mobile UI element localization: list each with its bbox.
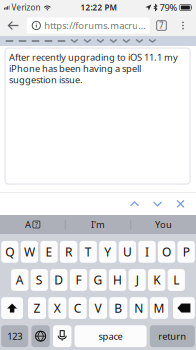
staticText: 12:22 PM bbox=[80, 2, 116, 13]
staticText: Verizon bbox=[12, 2, 41, 13]
button[interactable]: Delete bbox=[173, 297, 195, 319]
button[interactable]: Dismiss keyboard bbox=[169, 193, 192, 215]
staticText: Q bbox=[5, 244, 14, 260]
staticText: L bbox=[173, 272, 179, 288]
button[interactable]: Next field bbox=[146, 193, 169, 215]
button[interactable]: X bbox=[48, 297, 66, 319]
staticText: ? bbox=[35, 220, 38, 229]
staticText: W bbox=[24, 244, 35, 260]
staticText: After recently upgrading to iOS 11.1 my … bbox=[9, 51, 178, 86]
button[interactable]: You bbox=[131, 215, 196, 234]
button[interactable]: D bbox=[50, 269, 67, 291]
staticText: Z bbox=[33, 300, 40, 316]
staticText: F bbox=[75, 272, 81, 288]
button[interactable]: H bbox=[109, 269, 126, 291]
button[interactable]: Shift bbox=[1, 297, 23, 319]
button[interactable]: P bbox=[177, 241, 195, 263]
button[interactable]: C bbox=[69, 297, 87, 319]
button[interactable]: Y bbox=[99, 241, 116, 263]
button[interactable]: M bbox=[150, 297, 168, 319]
button[interactable]: space bbox=[75, 325, 147, 347]
button[interactable]: return bbox=[150, 325, 195, 347]
staticText: E bbox=[45, 244, 52, 260]
button[interactable]: Format bbox=[55, 36, 68, 46]
button[interactable]: K bbox=[148, 269, 165, 291]
staticText: I'm bbox=[91, 218, 105, 231]
staticText: P bbox=[183, 244, 190, 260]
staticText: N bbox=[134, 300, 143, 316]
staticText: V bbox=[94, 300, 101, 316]
button[interactable]: L bbox=[168, 269, 185, 291]
button[interactable]: Format bbox=[29, 36, 42, 46]
button[interactable]: Tabs bbox=[151, 15, 172, 36]
staticText: 79% bbox=[160, 1, 178, 14]
button[interactable]: E bbox=[40, 241, 58, 263]
button[interactable]: Format bbox=[133, 36, 146, 46]
staticText: J bbox=[136, 272, 139, 288]
button[interactable]: T bbox=[80, 241, 97, 263]
staticText: C bbox=[74, 300, 82, 316]
staticText: O bbox=[162, 244, 171, 260]
button[interactable]: Previous field bbox=[123, 193, 146, 215]
staticText: You bbox=[155, 218, 172, 231]
staticText: space bbox=[99, 330, 123, 342]
button[interactable]: U bbox=[119, 241, 136, 263]
staticText: T bbox=[85, 244, 92, 260]
staticText: K bbox=[153, 272, 160, 288]
staticText: G bbox=[93, 272, 102, 288]
button[interactable]: W bbox=[21, 241, 38, 263]
button[interactable]: Menu bbox=[172, 15, 194, 36]
button[interactable]: Next keyboard bbox=[31, 325, 50, 347]
button[interactable]: V bbox=[89, 297, 107, 319]
button[interactable]: 123 bbox=[1, 325, 28, 347]
button[interactable]: A bbox=[0, 215, 65, 234]
button[interactable]: B bbox=[109, 297, 127, 319]
button[interactable]: F bbox=[70, 269, 87, 291]
button[interactable]: Format bbox=[107, 36, 120, 46]
button[interactable]: Format bbox=[68, 36, 81, 46]
button[interactable]: R bbox=[60, 241, 77, 263]
staticText: M bbox=[153, 300, 164, 316]
button[interactable]: S bbox=[31, 269, 48, 291]
button[interactable]: Back bbox=[0, 15, 27, 36]
staticText: Y bbox=[104, 244, 111, 260]
staticText: A bbox=[16, 272, 24, 288]
staticText: R bbox=[65, 244, 72, 260]
staticText: 123 bbox=[7, 330, 22, 342]
button[interactable]: Format bbox=[42, 36, 55, 46]
button[interactable]: Q bbox=[1, 241, 18, 263]
staticText: 7 bbox=[159, 20, 164, 31]
staticText: U bbox=[123, 244, 132, 260]
button[interactable]: Z bbox=[28, 297, 46, 319]
button[interactable]: A bbox=[11, 269, 28, 291]
button[interactable]: I bbox=[138, 241, 156, 263]
button[interactable]: Format bbox=[120, 36, 133, 46]
staticText: X bbox=[54, 300, 61, 316]
button[interactable]: Format bbox=[16, 36, 29, 46]
staticText: I bbox=[145, 244, 149, 260]
button[interactable]: G bbox=[89, 269, 107, 291]
staticText: S bbox=[36, 272, 43, 288]
staticText: H bbox=[113, 272, 122, 288]
button[interactable]: Dictate bbox=[53, 325, 71, 347]
button[interactable]: J bbox=[128, 269, 146, 291]
staticText: return bbox=[158, 330, 186, 342]
staticText: https://forums.macrumo… bbox=[44, 19, 150, 32]
button[interactable]: Format bbox=[94, 36, 107, 46]
button[interactable]: Format bbox=[81, 36, 94, 46]
staticText: B bbox=[114, 300, 122, 316]
button[interactable]: Format bbox=[146, 36, 159, 46]
button[interactable]: I'm bbox=[66, 215, 130, 234]
button[interactable]: Format bbox=[3, 36, 16, 46]
staticText: D bbox=[54, 272, 63, 288]
staticText: A bbox=[25, 218, 31, 231]
button[interactable]: O bbox=[158, 241, 175, 263]
button[interactable]: https://forums.macrumo… bbox=[27, 17, 150, 33]
button[interactable]: N bbox=[130, 297, 148, 319]
